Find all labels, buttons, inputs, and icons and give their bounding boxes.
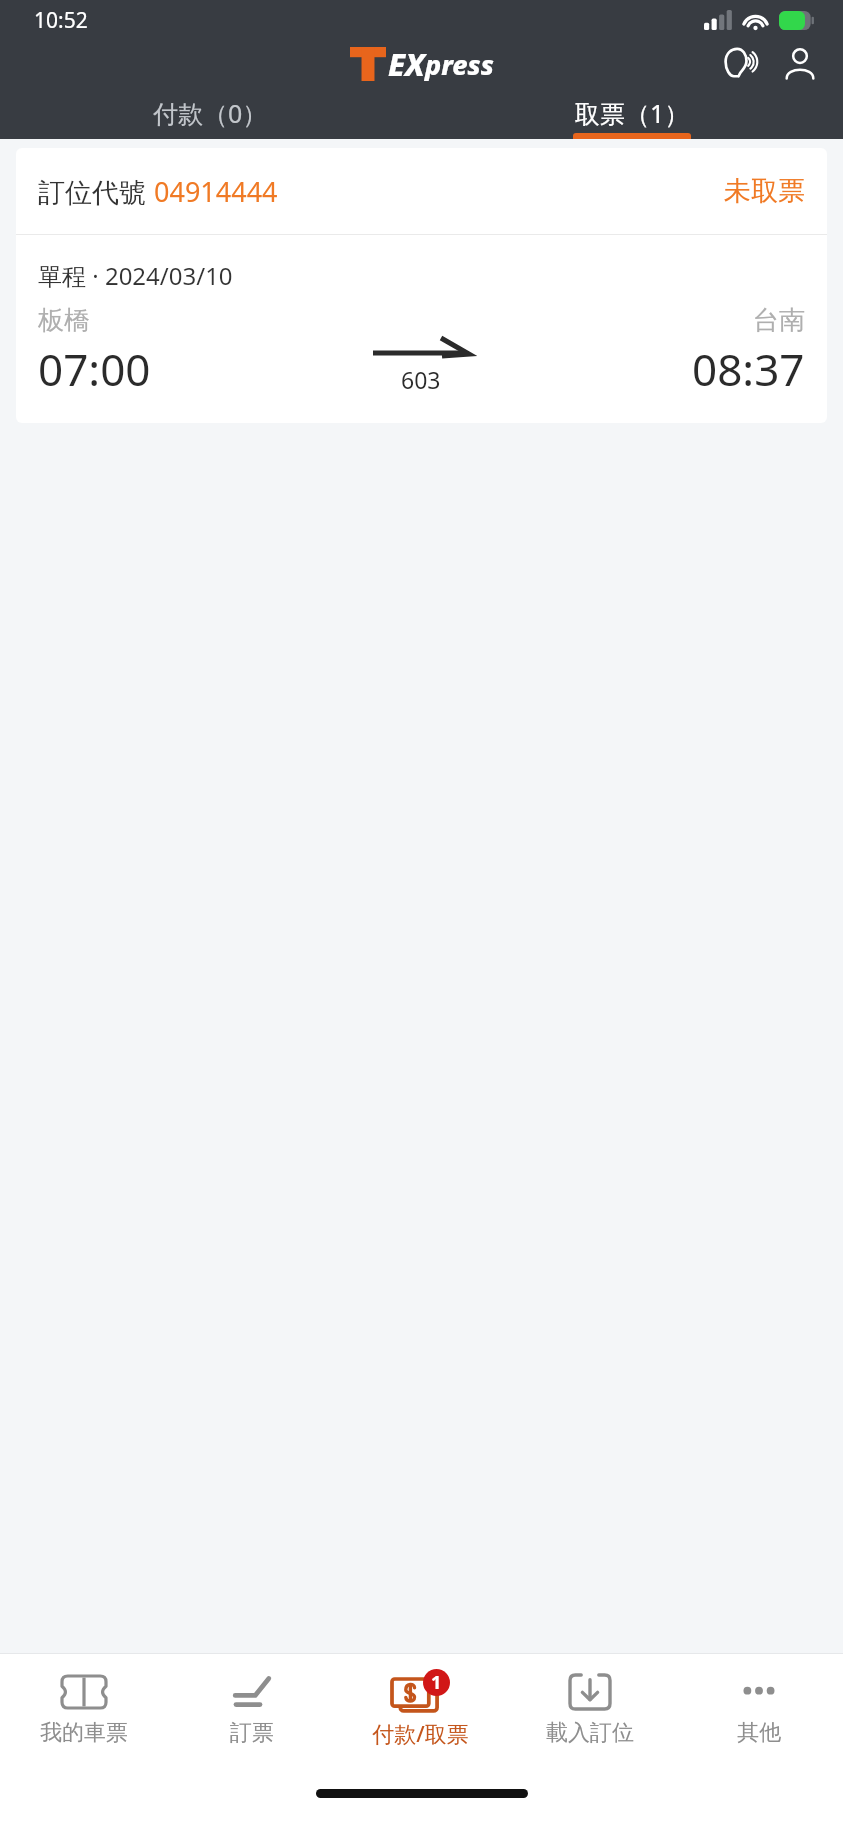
staticText: 603 <box>401 364 441 395</box>
staticText: 板橋 <box>38 304 90 337</box>
staticText: 未取票 <box>724 174 805 208</box>
staticText: 訂位代號 <box>38 173 154 210</box>
staticText: EX <box>388 43 425 85</box>
staticText: press <box>425 46 494 83</box>
staticText: 10:52 <box>34 6 88 35</box>
button[interactable]: 會員 <box>777 42 823 86</box>
button[interactable]: 語音客服 <box>717 42 763 86</box>
button[interactable]: 載入訂位 <box>505 1654 674 1762</box>
button[interactable]: 其他 <box>674 1654 843 1762</box>
staticText: 其他 <box>737 1719 781 1747</box>
staticText: 載入訂位 <box>546 1719 634 1747</box>
staticText: 07:00 <box>38 339 151 399</box>
button[interactable]: 取票（1） <box>421 86 843 139</box>
staticText: 付款（0） <box>153 96 268 130</box>
button[interactable]: 訂票 <box>168 1654 336 1762</box>
staticText: 04914444 <box>154 173 278 210</box>
staticText: 台南 <box>753 304 805 337</box>
staticText: 單程 · 2024/03/10 <box>38 259 233 292</box>
button[interactable]: 我的車票 <box>0 1654 168 1762</box>
staticText: 1 <box>431 1670 442 1695</box>
staticText: 我的車票 <box>40 1719 128 1747</box>
staticText: 取票（1） <box>575 96 690 130</box>
staticText: 付款/取票 <box>372 1718 469 1748</box>
button[interactable]: 訂位代號 <box>16 148 827 423</box>
button[interactable]: 1 <box>336 1654 505 1762</box>
staticText: 訂票 <box>230 1719 274 1747</box>
button[interactable]: 付款（0） <box>0 86 421 139</box>
staticText: 08:37 <box>692 339 805 399</box>
